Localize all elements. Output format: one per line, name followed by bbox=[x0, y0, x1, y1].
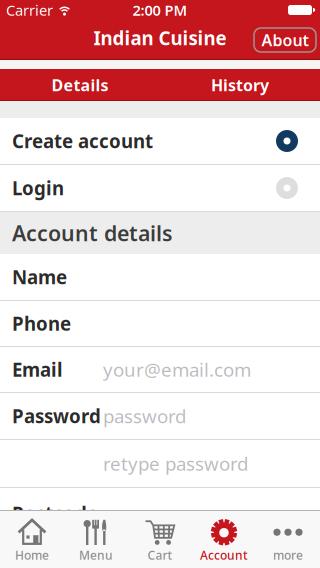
staticText: Password bbox=[12, 404, 101, 428]
staticText: Postcode bbox=[12, 501, 98, 526]
button[interactable] bbox=[0, 440, 320, 487]
button[interactable]: Phone bbox=[0, 301, 320, 346]
staticText: Email bbox=[12, 357, 63, 382]
staticText: Phone bbox=[12, 311, 71, 336]
staticText: Details bbox=[51, 74, 108, 96]
button[interactable]: About bbox=[254, 28, 316, 52]
button[interactable]: Cart bbox=[128, 511, 192, 568]
staticText: password bbox=[103, 404, 186, 428]
staticText: Indian Cuisine bbox=[93, 26, 226, 50]
button[interactable]: Home bbox=[0, 511, 64, 568]
button[interactable]: Menu bbox=[64, 511, 128, 568]
staticText: more bbox=[273, 547, 303, 563]
staticText: History bbox=[211, 74, 269, 96]
staticText: About bbox=[261, 29, 308, 51]
staticText: Home bbox=[15, 547, 49, 563]
staticText: Account details bbox=[12, 219, 173, 247]
button[interactable]: Details bbox=[0, 69, 160, 101]
staticText: Create account bbox=[12, 129, 153, 153]
button[interactable]: Postcode bbox=[0, 488, 320, 539]
staticText: Login bbox=[12, 176, 64, 200]
staticText: Menu bbox=[79, 547, 113, 563]
staticText: 2:00 PM bbox=[132, 0, 187, 20]
staticText: Account bbox=[200, 547, 248, 563]
button[interactable]: more bbox=[256, 511, 320, 568]
button[interactable]: Password bbox=[0, 393, 320, 439]
button[interactable]: History bbox=[160, 69, 320, 101]
button[interactable]: Account bbox=[192, 511, 256, 568]
button[interactable]: Email bbox=[0, 347, 320, 392]
staticText: Name bbox=[12, 265, 67, 289]
staticText: your@email.com bbox=[103, 357, 251, 382]
staticText: retype password bbox=[103, 451, 248, 476]
button[interactable]: Login bbox=[0, 165, 320, 211]
staticText: Cart bbox=[147, 547, 172, 563]
button[interactable]: Name bbox=[0, 254, 320, 300]
staticText: Carrier bbox=[6, 0, 53, 20]
button[interactable]: Create account bbox=[0, 118, 320, 164]
